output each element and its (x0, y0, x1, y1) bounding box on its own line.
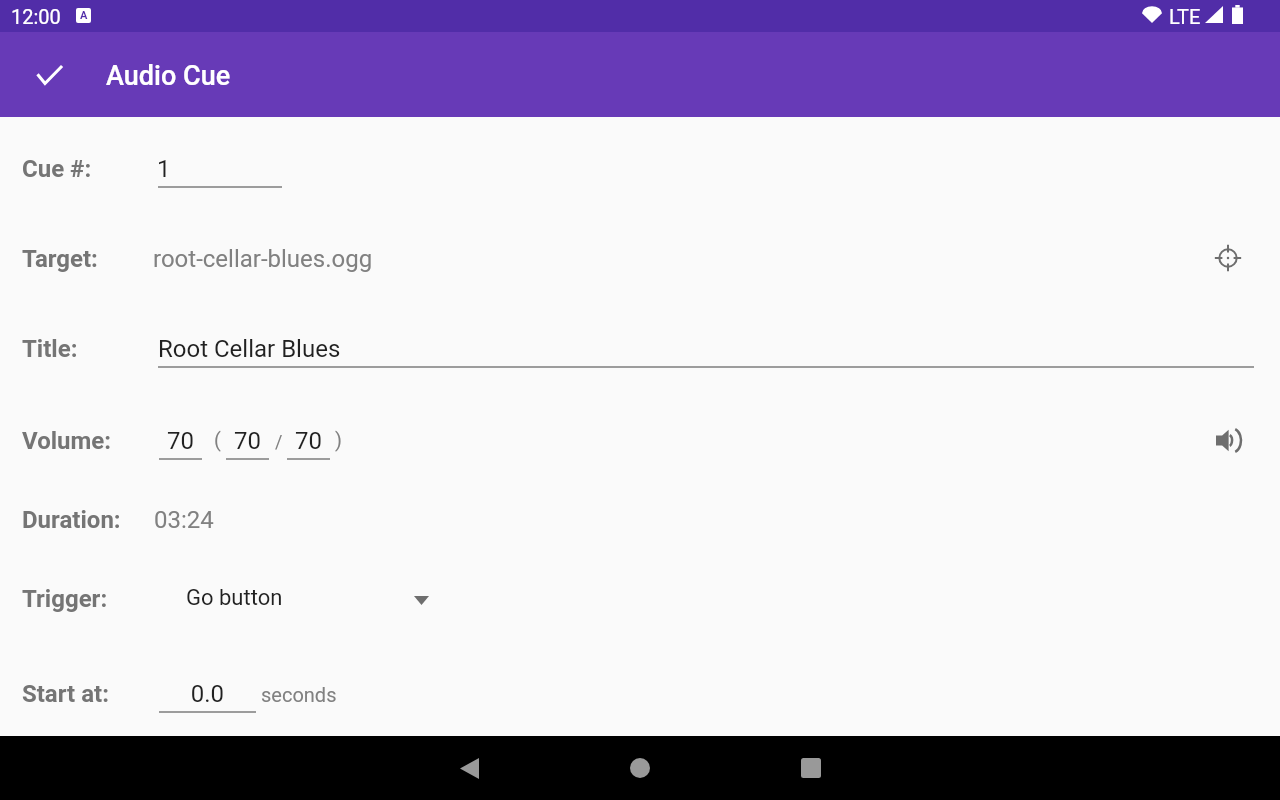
staticText: LTE (1169, 5, 1201, 28)
staticText: Trigger: (22, 585, 108, 613)
button[interactable]: Go button (172, 575, 442, 625)
staticText: Volume: (22, 427, 112, 455)
button[interactable]: Title (158, 332, 1254, 368)
staticText: Root Cellar Blues (158, 335, 341, 363)
staticText: 0.0 (158, 680, 224, 708)
staticText: Go button (186, 585, 283, 611)
staticText: Title: (22, 335, 78, 363)
staticText: ( (214, 428, 221, 451)
staticText: 12:00 (11, 5, 61, 28)
staticText: Target: (22, 245, 98, 273)
staticText: root-cellar-blues.ogg (153, 245, 373, 273)
button[interactable]: Cue number (158, 152, 282, 188)
button[interactable]: Home (610, 738, 670, 798)
button[interactable]: Volume (1216, 428, 1241, 453)
button[interactable]: Recent apps (781, 738, 841, 798)
staticText: 70 (159, 427, 202, 455)
button[interactable]: Back (439, 738, 499, 798)
button[interactable]: Start at seconds (159, 677, 256, 713)
staticText: seconds (261, 683, 337, 706)
staticText: / (275, 431, 283, 452)
button[interactable]: Fade in volume (226, 424, 269, 460)
staticText: 03:24 (154, 506, 214, 534)
button[interactable]: Choose target file (1207, 237, 1249, 279)
staticText: A (80, 9, 88, 22)
staticText: Start at: (22, 680, 109, 708)
staticText: 70 (226, 427, 269, 455)
staticText: Duration: (22, 506, 121, 534)
staticText: 70 (287, 427, 330, 455)
staticText: 1 (157, 155, 171, 183)
staticText: Audio Cue (106, 60, 231, 92)
button[interactable]: Volume (159, 424, 202, 460)
button[interactable]: Fade out volume (287, 424, 330, 460)
staticText: Cue #: (22, 155, 92, 183)
button[interactable]: Save (13, 39, 85, 111)
staticText: ) (335, 428, 342, 451)
